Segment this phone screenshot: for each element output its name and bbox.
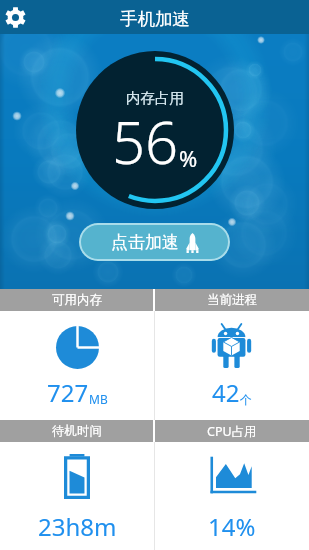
staticText: 个 — [240, 392, 252, 407]
button[interactable]: 42 — [154, 311, 309, 420]
staticText: 23h8m — [38, 510, 117, 543]
button[interactable]: 23h8m — [0, 442, 154, 550]
staticText: 点击加速 — [111, 232, 179, 253]
staticText: 内存占用 — [126, 89, 184, 107]
staticText: 待机时间 — [52, 423, 102, 439]
button[interactable]: 727 — [0, 311, 154, 420]
button[interactable]: 14% — [154, 442, 309, 550]
staticText: CPU占用 — [207, 423, 257, 440]
staticText: 42 — [212, 376, 240, 409]
staticText: 727 — [47, 376, 89, 409]
button[interactable]: Settings — [0, 0, 33, 34]
staticText: 56 — [112, 102, 179, 181]
staticText: 手机加速 — [120, 8, 190, 30]
staticText: 可用内存 — [52, 292, 102, 308]
button[interactable]: 点击加速 — [79, 223, 230, 261]
staticText: % — [179, 143, 198, 173]
staticText: MB — [89, 391, 108, 407]
staticText: 14% — [208, 510, 256, 543]
staticText: 当前进程 — [207, 292, 257, 308]
